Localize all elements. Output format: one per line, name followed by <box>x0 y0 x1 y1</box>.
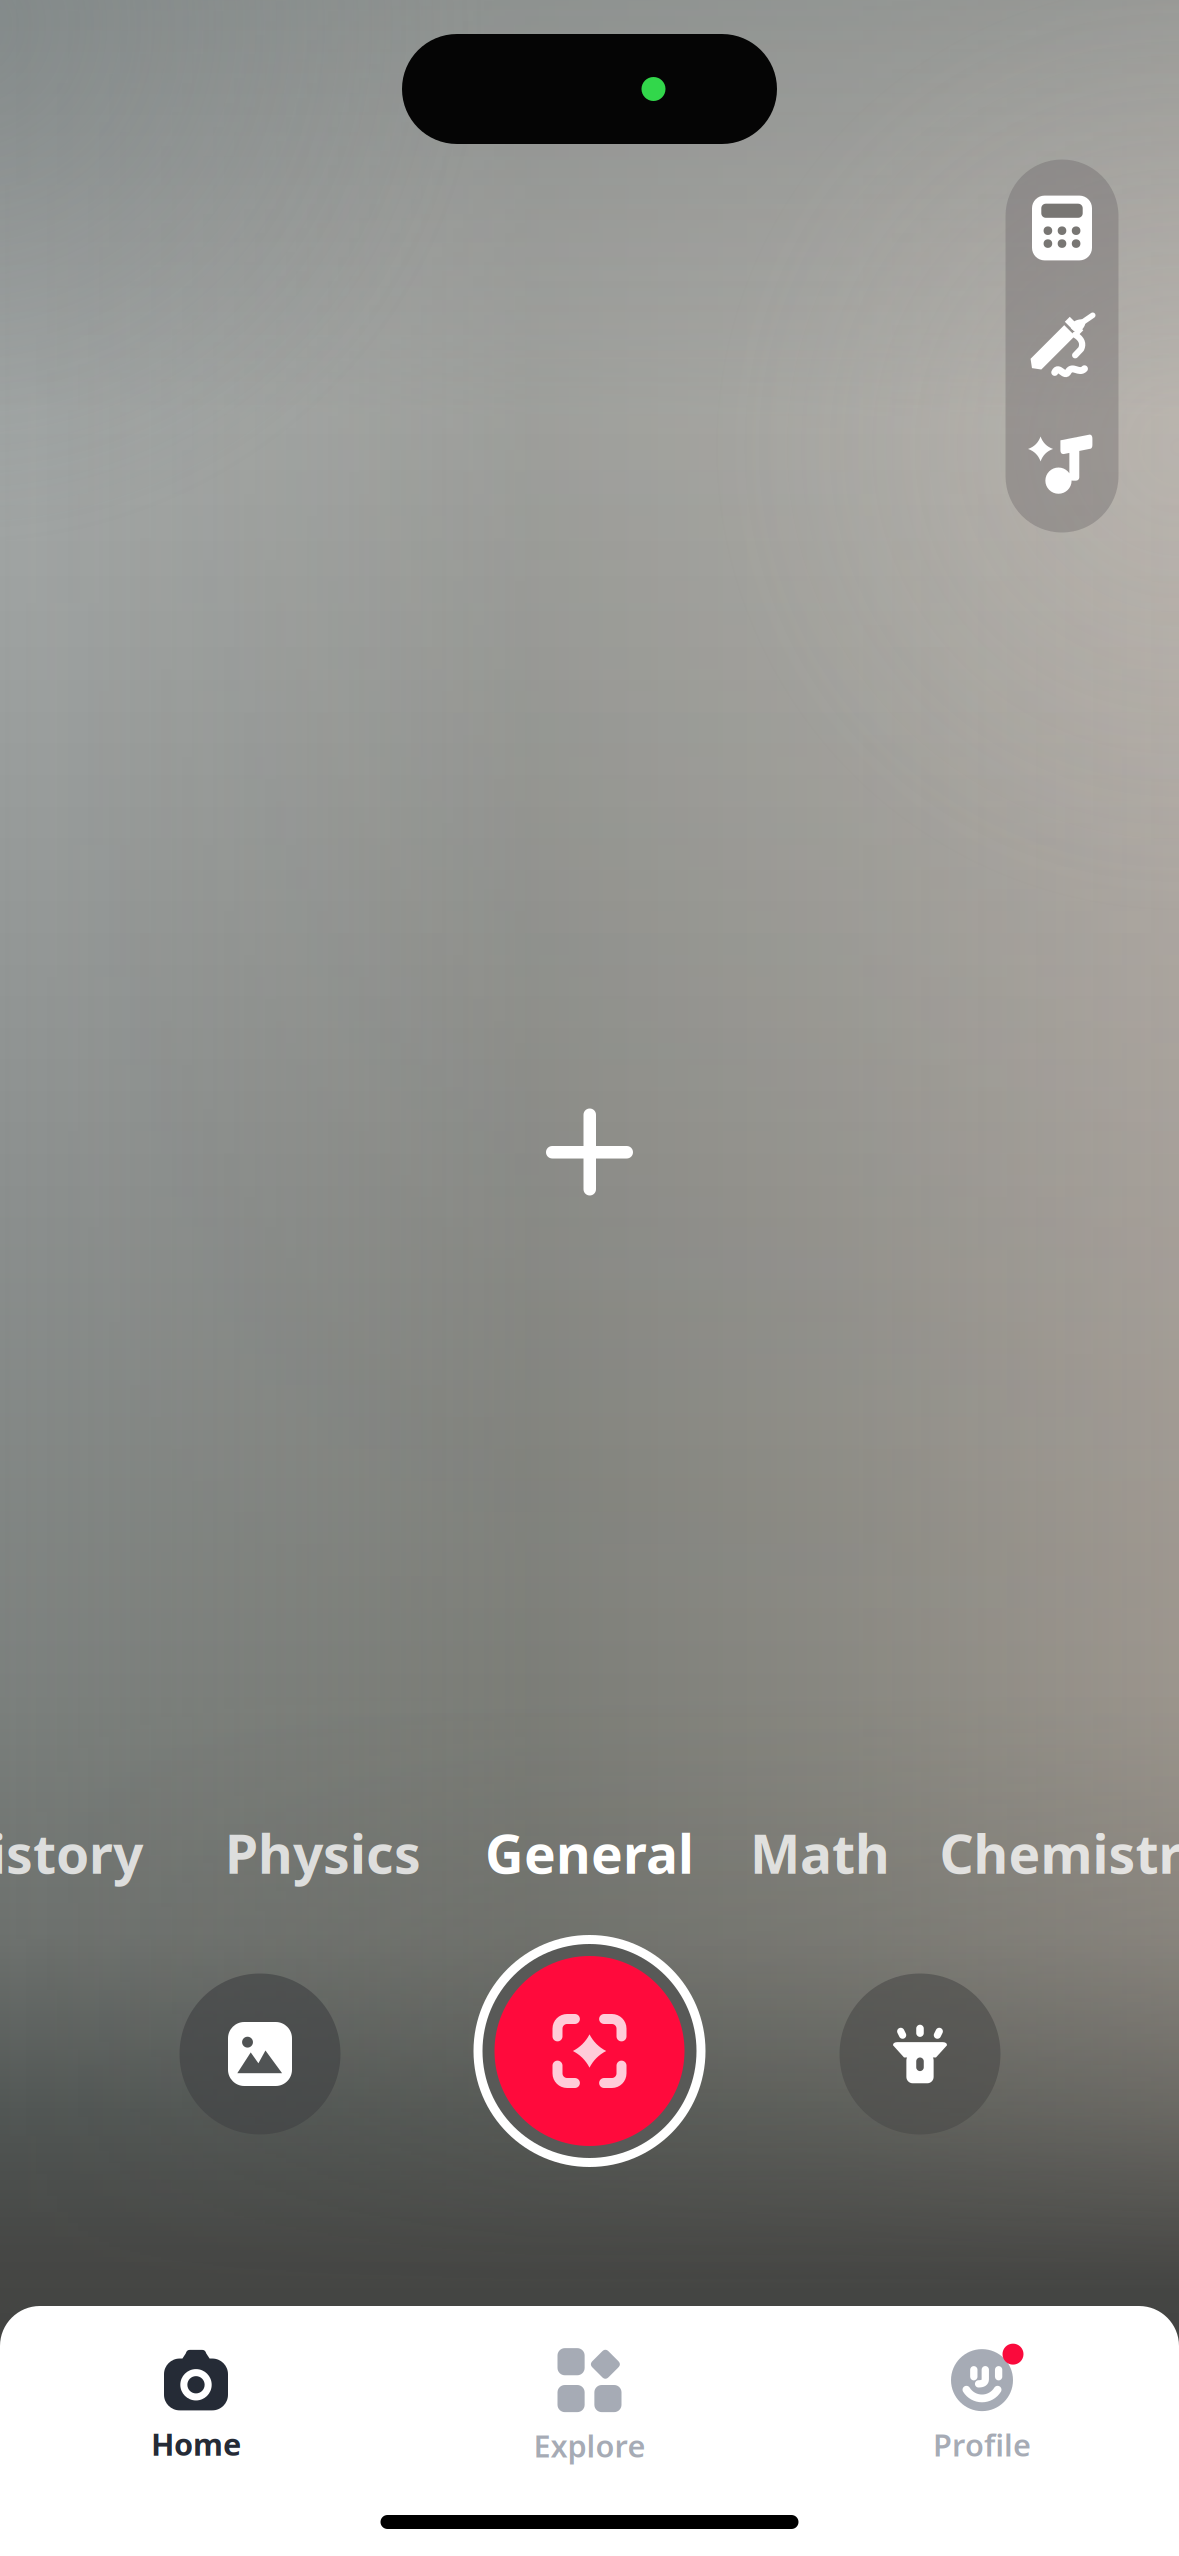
staticText: Chemistry <box>939 1818 1179 1888</box>
staticText: Profile <box>933 2424 1031 2465</box>
button[interactable]: Profile <box>785 2342 1178 2472</box>
button[interactable]: Home <box>0 2342 392 2472</box>
button[interactable]: Chemistry <box>913 1804 1179 1902</box>
button[interactable]: General <box>459 1804 720 1902</box>
button[interactable]: History <box>0 1804 169 1902</box>
button[interactable]: AI music <box>1005 405 1118 523</box>
button[interactable]: Calculator <box>1005 169 1118 287</box>
staticText: Math <box>750 1818 890 1888</box>
button[interactable]: Explore <box>393 2342 786 2472</box>
button[interactable]: Flashlight <box>839 1973 1000 2134</box>
button[interactable]: Physics <box>199 1804 447 1902</box>
staticText: Home <box>151 2423 241 2464</box>
staticText: History <box>0 1818 143 1888</box>
staticText: General <box>485 1818 694 1888</box>
staticText: Explore <box>533 2425 645 2466</box>
button[interactable]: Math <box>724 1804 916 1902</box>
button[interactable]: Write <box>1005 287 1118 405</box>
button[interactable]: Photo library <box>179 1973 340 2134</box>
button[interactable]: Scan <box>473 1935 705 2167</box>
staticText: Physics <box>225 1818 421 1888</box>
